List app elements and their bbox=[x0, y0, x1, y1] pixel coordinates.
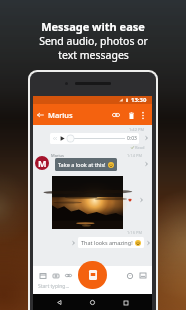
staticText: That looks amazing! bbox=[81, 239, 133, 246]
button[interactable]: Camera bbox=[51, 271, 60, 280]
staticText: Marius bbox=[51, 153, 64, 158]
button[interactable]: Back bbox=[34, 109, 46, 121]
staticText: 1:42 PM bbox=[129, 127, 145, 132]
button[interactable]: Delete bbox=[125, 109, 137, 121]
staticText: 1:16 PM bbox=[127, 230, 143, 235]
button[interactable]: Back bbox=[53, 296, 66, 309]
button[interactable]: Take a look at this! bbox=[55, 158, 117, 171]
staticText: 1:14 PM bbox=[127, 153, 143, 158]
button[interactable]: Sticker bbox=[138, 271, 147, 280]
button[interactable]: Gallery bbox=[38, 271, 47, 280]
button[interactable]: Marius avatar bbox=[35, 156, 49, 170]
staticText: Read bbox=[135, 145, 145, 150]
button[interactable]: Photo bbox=[52, 176, 123, 229]
staticText: Message with ease bbox=[41, 19, 145, 34]
button[interactable]: That looks amazing! bbox=[78, 237, 144, 248]
button[interactable]: Attach file bbox=[64, 271, 73, 280]
button[interactable]: Record voice message bbox=[78, 261, 107, 289]
staticText: M bbox=[38, 157, 47, 169]
staticText: Marius bbox=[48, 110, 73, 120]
button[interactable]: Attach bbox=[110, 109, 122, 121]
button[interactable]: Play audio message bbox=[50, 133, 139, 144]
button[interactable]: Home bbox=[86, 296, 99, 309]
staticText: Send audio, photos or text messages bbox=[39, 34, 148, 62]
button[interactable]: More options bbox=[137, 109, 149, 121]
staticText: 0:03 bbox=[127, 135, 137, 142]
button[interactable]: Emoji bbox=[125, 271, 134, 280]
staticText: Take a look at this! bbox=[58, 161, 106, 168]
staticText: Start typing... bbox=[38, 283, 70, 290]
button[interactable]: Recent apps bbox=[119, 296, 132, 309]
staticText: 13:30 bbox=[131, 96, 147, 104]
